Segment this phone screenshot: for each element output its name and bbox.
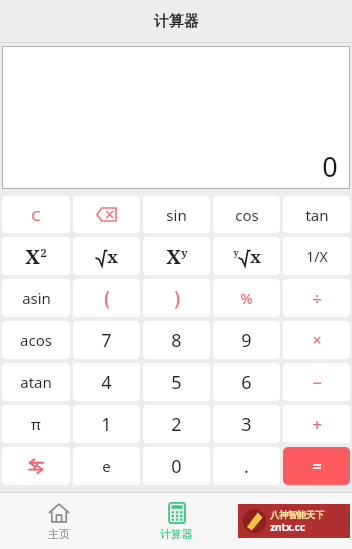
button[interactable]: 4 (73, 363, 140, 401)
staticText: x (250, 245, 261, 268)
button[interactable]: Y-th root (213, 237, 280, 275)
button[interactable]: ) (143, 279, 210, 317)
staticText: e (102, 456, 111, 476)
staticText: zntx.cc (270, 520, 305, 534)
button[interactable]: ÷ (283, 279, 350, 317)
button[interactable]: π (2, 405, 70, 443)
staticText: atan (20, 372, 52, 392)
staticText: tan (305, 205, 329, 225)
staticText: 8 (171, 328, 182, 353)
button[interactable]: asin (2, 279, 70, 317)
staticText: 5 (171, 370, 182, 395)
staticText: 7 (101, 328, 112, 353)
button[interactable]: tan (283, 196, 350, 233)
button[interactable]: 主页 (0, 493, 118, 549)
button[interactable]: acos (2, 321, 70, 359)
staticText: % (240, 288, 253, 308)
button[interactable]: ( (73, 279, 140, 317)
staticText: sin (166, 205, 187, 225)
staticText: y (233, 246, 239, 258)
button[interactable]: Square root (73, 237, 140, 275)
staticText: × (312, 329, 322, 351)
staticText: C (31, 205, 41, 225)
staticText: 计算器 (160, 527, 193, 541)
staticText: y (181, 245, 188, 260)
staticText: 2 (40, 245, 47, 260)
staticText: 1/X (306, 247, 328, 266)
staticText: x (107, 245, 118, 268)
staticText: − (312, 371, 322, 394)
staticText: X (25, 243, 40, 270)
staticText: X (166, 243, 181, 270)
button[interactable]: 3 (213, 405, 280, 443)
button[interactable]: 2 (143, 405, 210, 443)
button[interactable]: . (213, 447, 280, 485)
staticText: π (31, 414, 41, 434)
staticText: 2 (171, 412, 182, 437)
button[interactable]: cos (213, 196, 280, 233)
button[interactable]: Swap (2, 447, 70, 485)
staticText: 3 (241, 412, 252, 437)
staticText: acos (20, 330, 52, 350)
button[interactable]: = (283, 447, 350, 485)
button[interactable]: C (2, 196, 70, 233)
staticText: 6 (241, 370, 252, 395)
button[interactable]: e (73, 447, 140, 485)
button[interactable]: 9 (213, 321, 280, 359)
button[interactable]: 0 (143, 447, 210, 485)
button[interactable]: 计算器 (118, 493, 235, 549)
button[interactable]: atan (2, 363, 70, 401)
staticText: 计算器 (154, 12, 199, 31)
staticText: 八神智能天下 (270, 509, 324, 520)
staticText: ( (104, 285, 110, 311)
button[interactable]: 6 (213, 363, 280, 401)
button[interactable]: 5 (143, 363, 210, 401)
staticText: + (312, 413, 322, 436)
button[interactable]: X to the power y (143, 237, 210, 275)
staticText: ÷ (312, 287, 322, 310)
staticText: 主页 (48, 527, 70, 541)
staticText: 0 (322, 148, 338, 185)
staticText: 1 (101, 412, 112, 437)
staticText: 0 (171, 454, 182, 479)
button[interactable]: − (283, 363, 350, 401)
staticText: ) (174, 285, 180, 311)
staticText: cos (235, 205, 259, 225)
button[interactable]: sin (143, 196, 210, 233)
button[interactable]: 1 (73, 405, 140, 443)
button[interactable]: 8 (143, 321, 210, 359)
staticText: = (312, 455, 322, 477)
button[interactable]: 7 (73, 321, 140, 359)
button[interactable]: % (213, 279, 280, 317)
button[interactable]: X squared (2, 237, 70, 275)
button[interactable]: 1/X (283, 237, 350, 275)
staticText: . (244, 454, 249, 479)
staticText: asin (22, 288, 51, 308)
button[interactable]: × (283, 321, 350, 359)
staticText: 9 (241, 328, 252, 353)
button[interactable]: Backspace (73, 196, 140, 233)
staticText: 4 (101, 370, 112, 395)
button[interactable]: + (283, 405, 350, 443)
